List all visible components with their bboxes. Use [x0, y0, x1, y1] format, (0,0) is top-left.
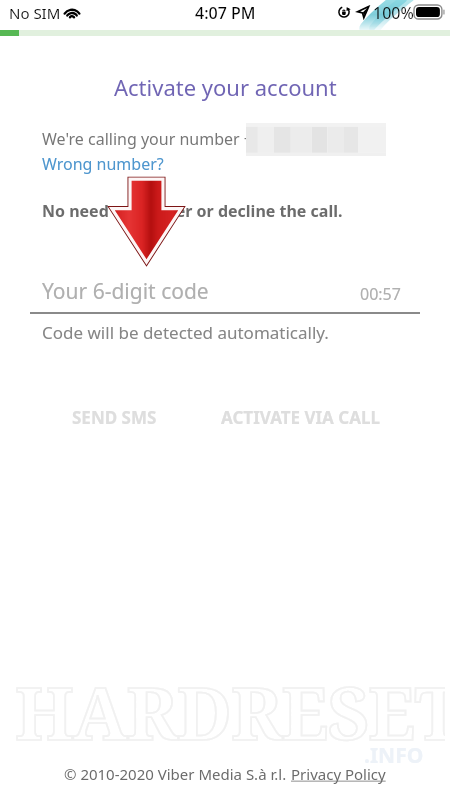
staticText: Your 6-digit code: [42, 277, 209, 306]
staticText: 4:07 PM: [195, 2, 256, 24]
staticText: HARDRESET: [15, 663, 445, 761]
button[interactable]: ACTIVATE VIA CALL: [204, 397, 397, 437]
staticText: We're calling your number +: [42, 128, 253, 150]
staticText: ACTIVATE VIA CALL: [221, 406, 380, 429]
staticText: SEND SMS: [72, 406, 157, 429]
staticText: No SIM: [9, 3, 61, 23]
staticText: Wrong number?: [42, 153, 164, 175]
staticText: Code will be detected automatically.: [42, 321, 329, 344]
staticText: © 2010-2020 Viber Media S.à r.l.: [64, 764, 291, 784]
button[interactable]: Wrong number?: [42, 150, 170, 174]
button[interactable]: SEND SMS: [56, 397, 172, 437]
staticText: No need to answer or decline the call.: [42, 200, 343, 222]
button[interactable]: Your 6-digit code input: [30, 270, 420, 314]
staticText: Activate your account: [114, 72, 337, 102]
staticText: 100%: [373, 2, 414, 24]
staticText: .INFO: [364, 741, 424, 770]
staticText: 00:57: [360, 283, 401, 305]
staticText: Privacy Policy: [291, 764, 386, 784]
button[interactable]: Privacy Policy: [291, 764, 386, 784]
